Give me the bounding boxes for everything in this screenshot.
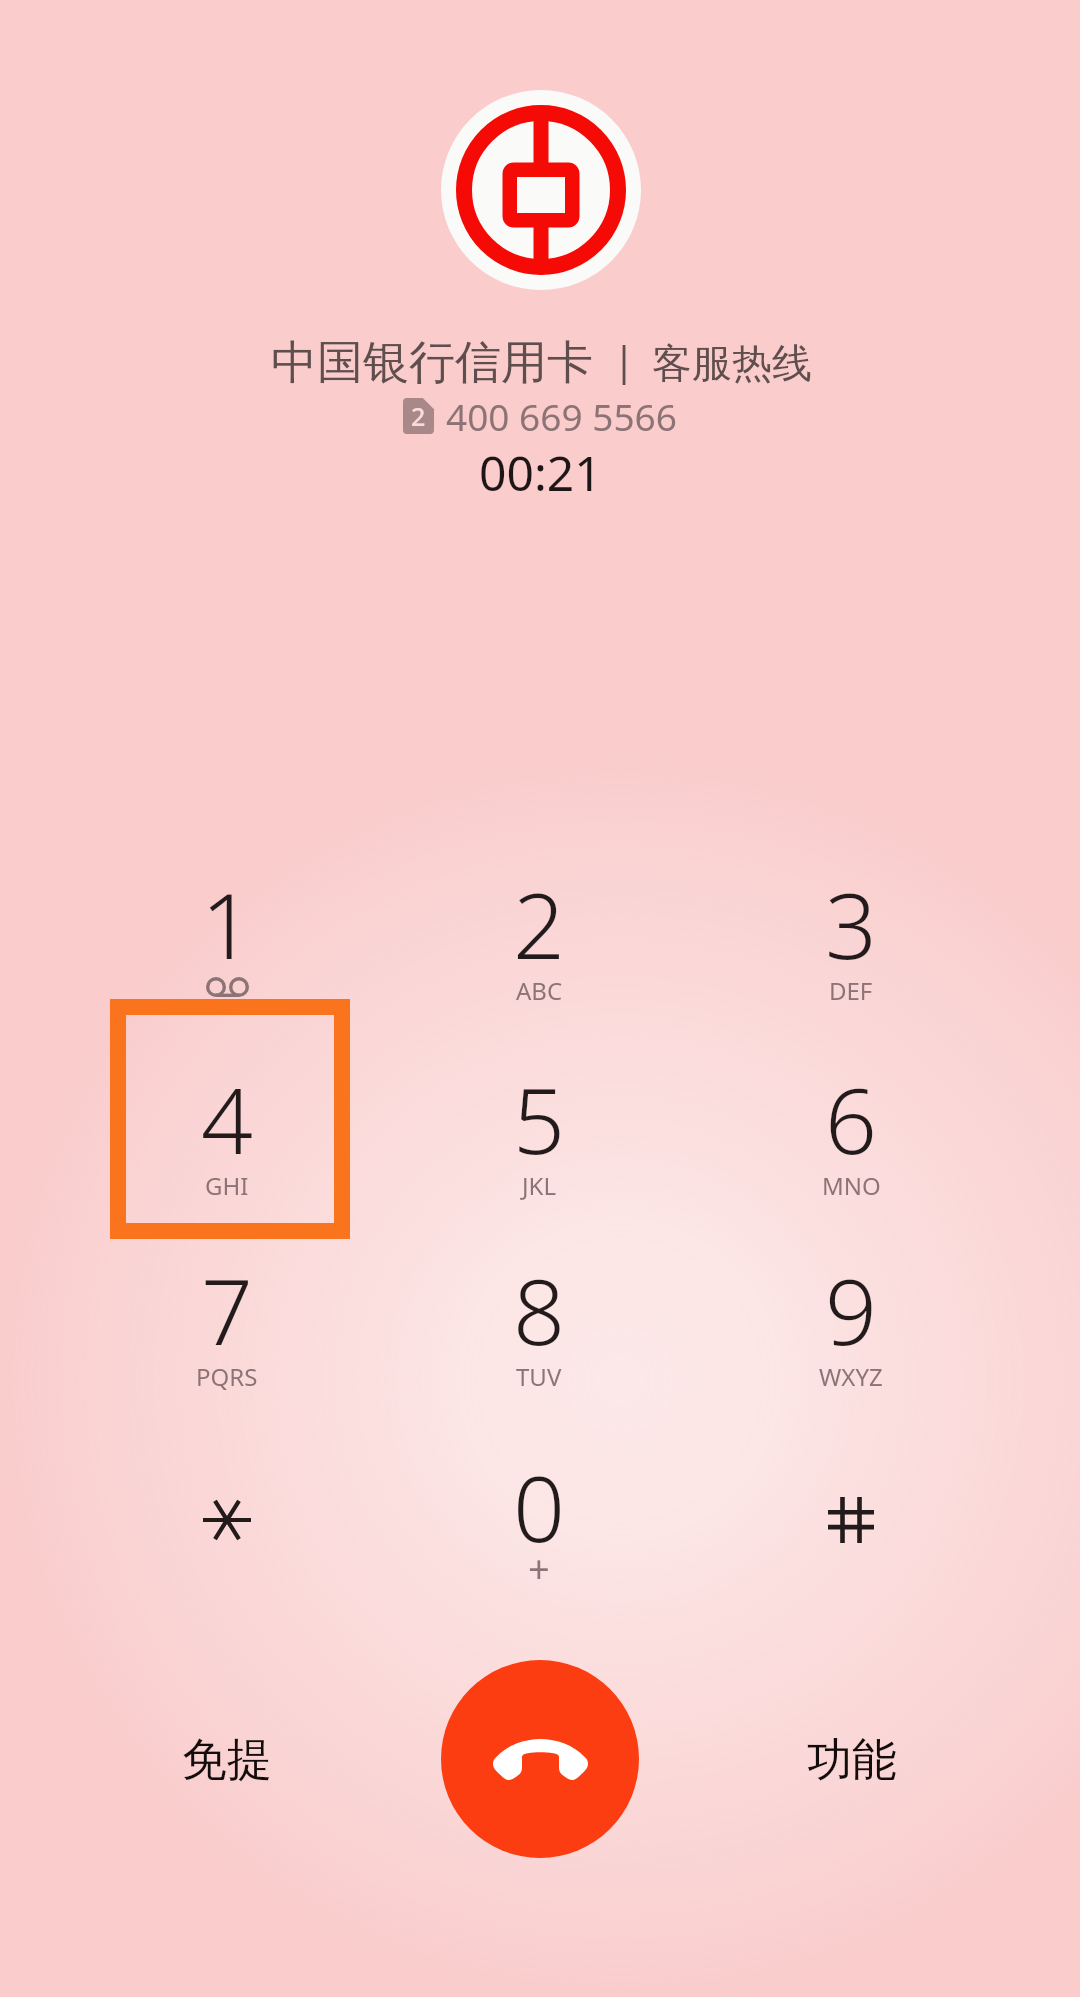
button[interactable]: 7 xyxy=(71,1217,383,1407)
staticText: 7 xyxy=(201,1248,253,1368)
staticText: 功能 xyxy=(807,1732,897,1789)
staticText: 00:21 xyxy=(479,440,602,505)
staticText: + xyxy=(528,1542,550,1590)
button[interactable]: 9 xyxy=(695,1217,1007,1407)
button[interactable]: 5 xyxy=(383,1026,695,1216)
staticText: 中国银行信用卡 xyxy=(271,334,593,392)
staticText: 免提 xyxy=(182,1732,272,1789)
staticText: TUV xyxy=(516,1360,562,1393)
staticText: 2 xyxy=(411,399,426,433)
button[interactable]: 0 xyxy=(383,1414,695,1604)
staticText: 8 xyxy=(513,1248,565,1368)
staticText: 6 xyxy=(825,1057,877,1177)
staticText: 0 xyxy=(513,1445,565,1565)
button[interactable]: 8 xyxy=(383,1217,695,1407)
staticText: DEF xyxy=(829,974,873,1007)
staticText: 1 xyxy=(201,862,253,982)
staticText: ABC xyxy=(516,974,563,1007)
button[interactable]: 1 voicemail xyxy=(71,831,383,1021)
button[interactable]: End call xyxy=(441,1660,639,1858)
staticText: JKL xyxy=(522,1169,556,1202)
button[interactable]: 3 xyxy=(695,831,1007,1021)
button[interactable]: 功能 xyxy=(772,1700,932,1820)
button[interactable]: pound xyxy=(695,1425,1007,1615)
button[interactable]: star xyxy=(71,1425,383,1615)
staticText: 3 xyxy=(825,862,877,982)
staticText: 4 xyxy=(201,1057,253,1177)
staticText: 400 669 5566 xyxy=(446,391,677,441)
button[interactable]: 2 xyxy=(383,831,695,1021)
staticText: GHI xyxy=(205,1169,249,1202)
staticText: | xyxy=(613,332,636,386)
staticText: PQRS xyxy=(196,1360,258,1393)
staticText: MNO xyxy=(822,1169,881,1202)
staticText: 2 xyxy=(513,862,565,982)
staticText: 客服热线 xyxy=(652,338,812,388)
staticText: 9 xyxy=(825,1248,877,1368)
button[interactable]: 6 xyxy=(695,1026,1007,1216)
button[interactable]: 免提 xyxy=(147,1700,307,1820)
staticText: 5 xyxy=(513,1057,565,1177)
button[interactable]: 4 xyxy=(71,1026,383,1216)
staticText: WXYZ xyxy=(819,1360,883,1393)
